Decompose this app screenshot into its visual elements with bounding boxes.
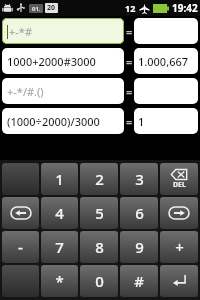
button[interactable]: +-*# <box>2 18 124 44</box>
staticText: +-*/#.() <box>7 84 44 99</box>
button[interactable]: 8 <box>80 231 118 263</box>
button[interactable]: 6 <box>120 197 158 229</box>
button[interactable] <box>134 18 198 44</box>
button[interactable]: 1 <box>41 163 78 195</box>
staticText: DEL <box>173 180 186 190</box>
button[interactable]: 2 <box>80 163 118 195</box>
staticText: +-*# <box>9 24 33 39</box>
button[interactable]: 7 <box>41 231 78 263</box>
button[interactable]: + <box>160 231 198 263</box>
button[interactable] <box>2 163 39 195</box>
button[interactable]: 1000+2000#3000 <box>2 48 124 74</box>
button[interactable]: Move cursor left <box>2 197 39 229</box>
staticText: 1 <box>138 114 145 129</box>
staticText: = <box>126 24 133 39</box>
staticText: 9 <box>135 237 144 257</box>
staticText: 7 <box>55 237 64 257</box>
button[interactable]: (1000÷2000)/3000 <box>2 108 124 134</box>
button[interactable]: # <box>120 265 158 297</box>
staticText: 4 <box>55 203 64 223</box>
staticText: * <box>55 271 64 291</box>
staticText: 20 <box>47 3 56 13</box>
staticText: 1000+2000#3000 <box>7 54 96 69</box>
button[interactable]: 9 <box>120 231 158 263</box>
staticText: 5 <box>95 203 104 223</box>
staticText: 2 <box>95 169 104 189</box>
staticText: = <box>126 114 133 129</box>
staticText: 0 <box>95 271 104 291</box>
button[interactable]: 0 <box>80 265 118 297</box>
button[interactable]: Delete <box>160 163 198 195</box>
staticText: (1000÷2000)/3000 <box>7 114 100 129</box>
staticText: 1.000,667 <box>138 54 189 69</box>
staticText: 6 <box>135 203 144 223</box>
staticText: 8 <box>95 237 104 257</box>
button[interactable]: 3 <box>120 163 158 195</box>
staticText: # <box>134 271 144 291</box>
staticText: 12 <box>125 2 136 14</box>
staticText: = <box>126 84 133 99</box>
button[interactable]: * <box>41 265 78 297</box>
button[interactable]: - <box>2 231 39 263</box>
button[interactable]: Move cursor right <box>160 197 198 229</box>
button[interactable]: Enter <box>160 265 198 297</box>
staticText: - <box>18 237 23 257</box>
button[interactable]: 4 <box>41 197 78 229</box>
button[interactable] <box>134 78 198 104</box>
staticText: 3 <box>135 169 144 189</box>
staticText: 19:42 <box>172 1 198 15</box>
staticText: + <box>175 237 184 257</box>
button[interactable]: 5 <box>80 197 118 229</box>
staticText: 1 <box>55 169 64 189</box>
button[interactable]: 1 <box>134 108 198 134</box>
staticText: 01. <box>32 5 41 13</box>
button[interactable]: +-*/#.() <box>2 78 124 104</box>
staticText: = <box>126 54 133 69</box>
button[interactable]: 1.000,667 <box>134 48 198 74</box>
button[interactable] <box>2 265 39 297</box>
